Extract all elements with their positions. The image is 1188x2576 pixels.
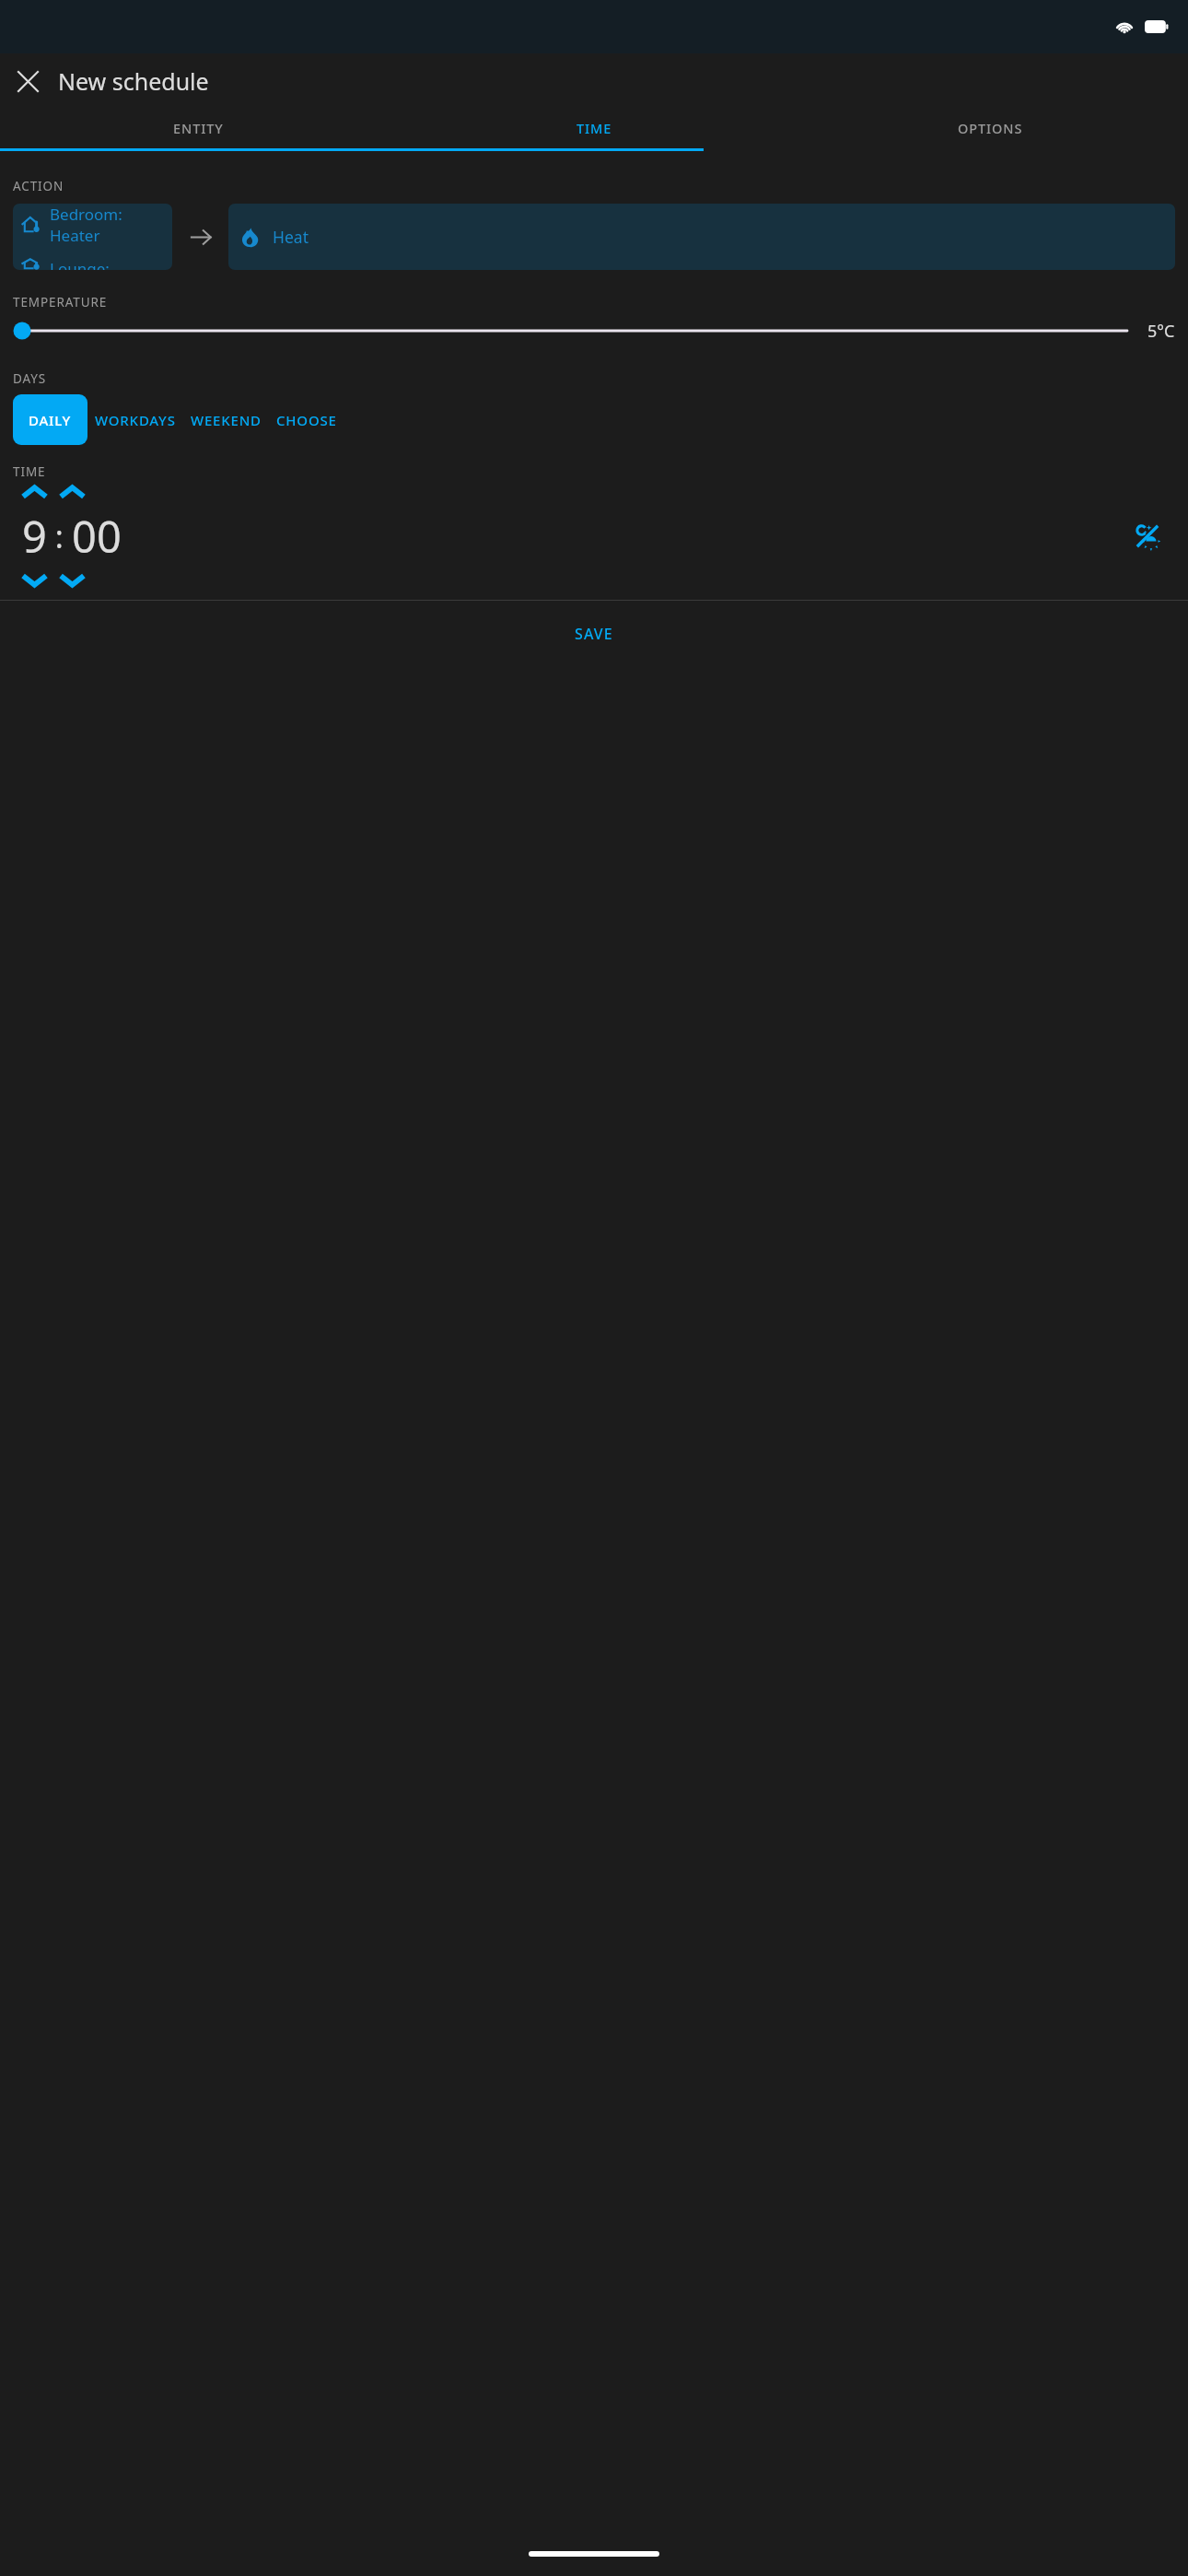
button[interactable]: SAVE [0,601,1188,667]
staticText: Heat [273,226,309,248]
staticText: TIME [13,463,46,480]
staticText: TEMPERATURE [13,294,108,310]
staticText: SAVE [575,624,613,644]
staticText: DAILY [29,411,72,429]
staticText: ACTION [13,178,64,194]
button[interactable]: DAILY [13,394,87,445]
staticText: 5°C [1147,320,1175,343]
button[interactable]: CHOOSE [269,394,344,445]
button[interactable]: ENTITY [0,108,396,148]
button[interactable]: Heat [228,204,1175,270]
button[interactable]: Increase minute [53,480,90,504]
staticText: Bedroom: Heater [50,204,163,246]
button[interactable]: OPTIONS [792,108,1188,148]
staticText: OPTIONS [958,119,1023,137]
staticText: New schedule [58,65,209,97]
button[interactable]: WORKDAYS [87,394,183,445]
button[interactable]: Decrease hour [16,568,52,592]
button[interactable] [13,310,1138,351]
button[interactable]: Bedroom: Heater [13,204,172,270]
button[interactable]: Sunrise sunset [1127,516,1168,556]
staticText: WORKDAYS [95,411,176,429]
button[interactable]: 9 [22,507,47,566]
staticText: CHOOSE [276,411,337,429]
button[interactable]: Close [6,59,50,103]
staticText: WEEKEND [191,411,262,429]
staticText: : [47,515,72,557]
button[interactable]: Decrease minute [53,568,90,592]
staticText: TIME [577,119,612,137]
staticText: ENTITY [173,119,224,137]
staticText: DAYS [13,370,47,387]
button[interactable]: 00 [72,507,122,566]
button[interactable]: TIME [396,108,792,148]
staticText: Lounge: Heater [50,258,163,270]
button[interactable]: Increase hour [16,480,52,504]
button[interactable]: WEEKEND [183,394,269,445]
